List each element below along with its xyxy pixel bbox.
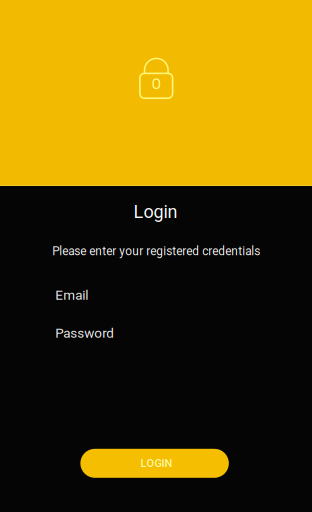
button[interactable]: Password: [55, 320, 256, 346]
staticText: Login: [133, 201, 177, 222]
staticText: Password: [55, 325, 114, 341]
staticText: LOGIN: [141, 457, 173, 470]
staticText: Please enter your registered credentials: [52, 244, 260, 258]
button[interactable]: Email: [55, 282, 256, 308]
button[interactable]: LOGIN: [80, 449, 229, 478]
staticText: Email: [55, 287, 88, 303]
